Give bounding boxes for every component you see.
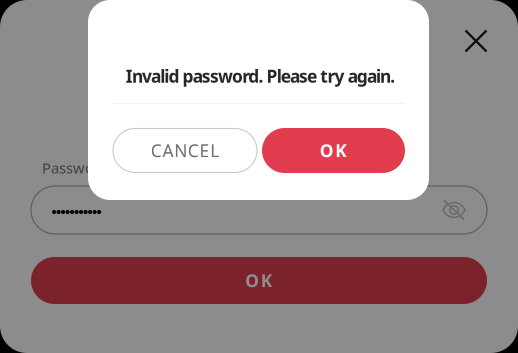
staticText: Password bbox=[42, 158, 109, 177]
staticText: C bbox=[151, 139, 162, 162]
staticText: A bbox=[162, 139, 173, 162]
staticText: O bbox=[245, 269, 259, 292]
button[interactable]: O bbox=[262, 128, 405, 173]
staticText: N bbox=[174, 139, 187, 162]
staticText: K bbox=[335, 139, 347, 162]
staticText: E bbox=[200, 139, 210, 162]
button[interactable]: Close bbox=[454, 19, 498, 63]
button[interactable]: O bbox=[31, 257, 487, 304]
button[interactable]: C bbox=[113, 128, 257, 172]
staticText: O bbox=[320, 139, 334, 162]
staticText: K bbox=[261, 269, 273, 292]
staticText: Invalid password. Please try again. bbox=[126, 64, 395, 87]
staticText: C bbox=[188, 139, 199, 162]
staticText: L bbox=[210, 139, 219, 162]
